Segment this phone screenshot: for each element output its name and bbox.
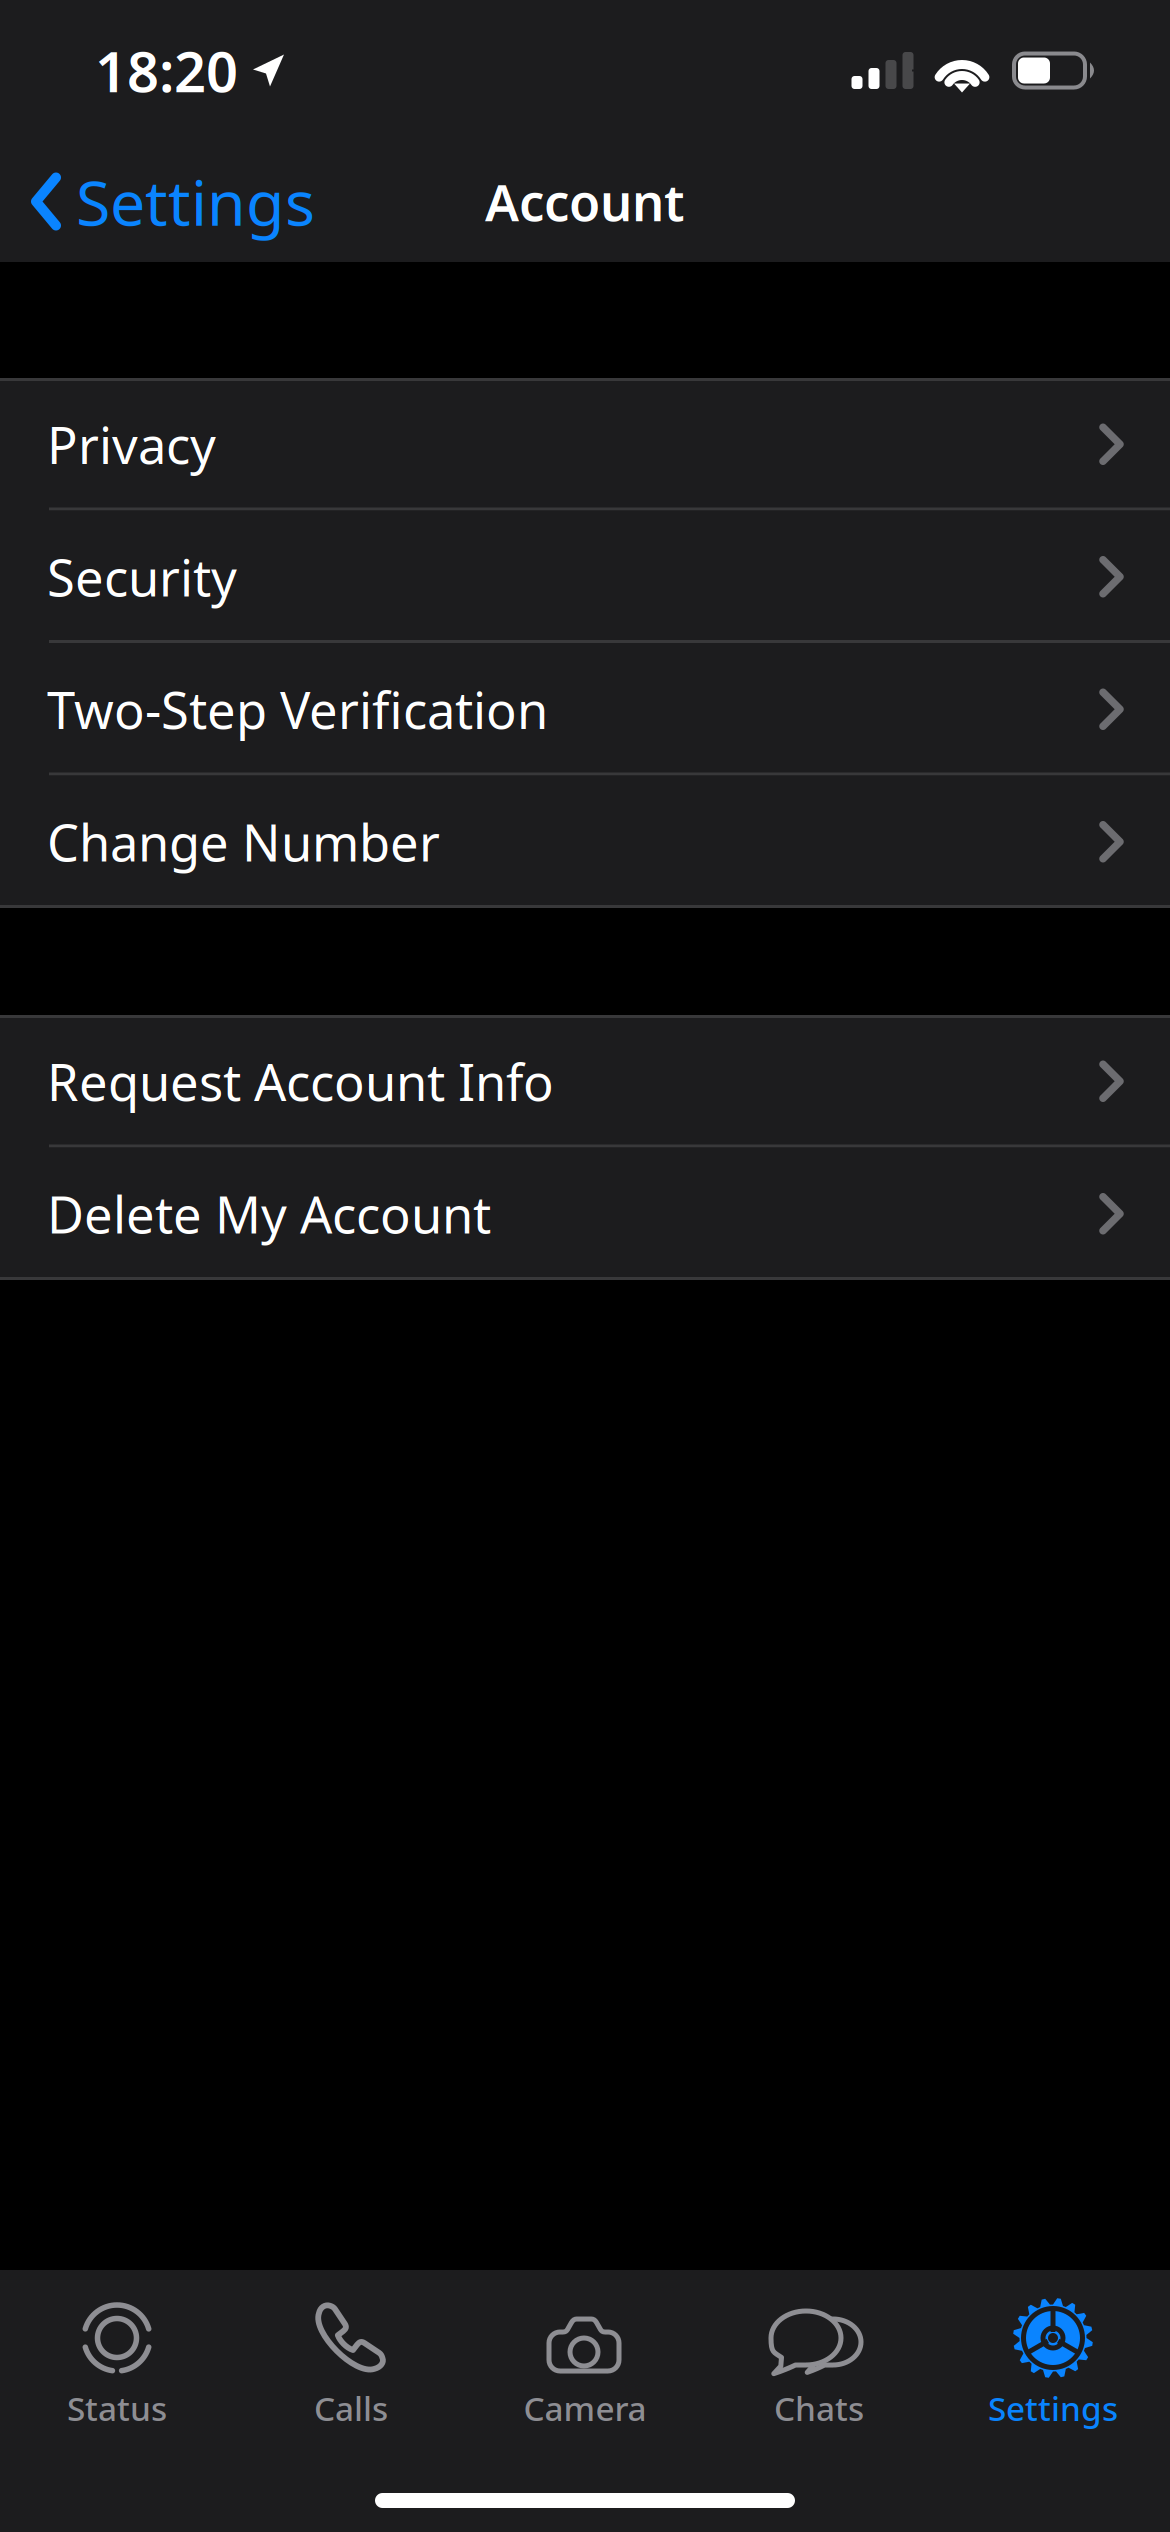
button[interactable]: Settings bbox=[936, 2270, 1170, 2438]
staticText: Calls bbox=[314, 2386, 388, 2430]
button[interactable]: Calls bbox=[234, 2270, 468, 2438]
staticText: Account bbox=[485, 168, 685, 235]
staticText: Status bbox=[67, 2386, 167, 2430]
button[interactable]: Chats bbox=[702, 2270, 936, 2438]
staticText: Delete My Account bbox=[47, 1180, 491, 1247]
staticText: Security bbox=[47, 543, 237, 610]
button[interactable]: Security bbox=[0, 510, 1170, 643]
staticText: Request Account Info bbox=[47, 1048, 554, 1115]
button[interactable]: Change Number bbox=[0, 775, 1170, 908]
staticText: Camera bbox=[523, 2386, 646, 2430]
staticText: 18:20 bbox=[95, 33, 238, 108]
staticText: Two-Step Verification bbox=[47, 676, 548, 743]
staticText: Chats bbox=[774, 2386, 864, 2430]
staticText: Settings bbox=[988, 2386, 1118, 2430]
button[interactable]: Two-Step Verification bbox=[0, 643, 1170, 775]
button[interactable]: Delete My Account bbox=[0, 1147, 1170, 1280]
button[interactable]: Status bbox=[0, 2270, 234, 2438]
button[interactable]: Request Account Info bbox=[0, 1015, 1170, 1147]
staticText: Settings bbox=[76, 160, 315, 243]
staticText: Privacy bbox=[47, 411, 216, 478]
button[interactable]: Privacy bbox=[0, 378, 1170, 510]
button[interactable]: Settings bbox=[0, 141, 339, 262]
button[interactable]: Camera bbox=[468, 2270, 702, 2438]
staticText: Change Number bbox=[47, 808, 440, 875]
